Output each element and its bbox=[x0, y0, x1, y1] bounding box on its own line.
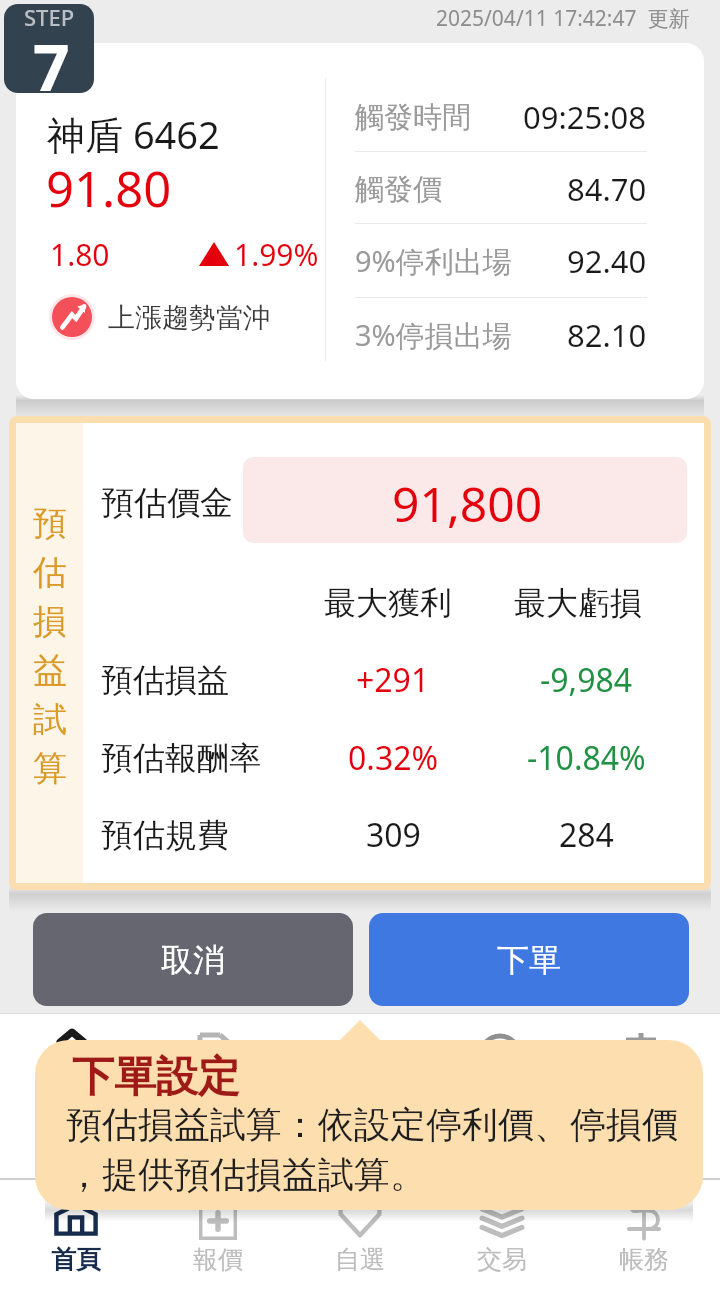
button[interactable]: 帳務 bbox=[572, 1198, 716, 1298]
staticText: 上漲趨勢當沖 bbox=[108, 301, 270, 335]
staticText: 預估損益試算：依設定停利價、停損價 bbox=[66, 1102, 678, 1147]
button[interactable]: 下單 bbox=[369, 913, 689, 1006]
staticText: 92.40 bbox=[567, 240, 647, 282]
staticText: 益 bbox=[33, 649, 67, 692]
staticText: 估 bbox=[33, 551, 67, 594]
staticText: 預估價金 bbox=[101, 482, 233, 524]
staticText: 3%停損出場 bbox=[355, 315, 512, 355]
other: 交易 bbox=[479, 1205, 525, 1237]
staticText: 損 bbox=[33, 600, 67, 643]
staticText: 9%停利出場 bbox=[355, 241, 512, 281]
button[interactable]: 交易 bbox=[430, 1198, 574, 1298]
button[interactable]: 首頁 bbox=[4, 1198, 148, 1298]
staticText: 自選 bbox=[335, 1244, 385, 1275]
staticText: 試 bbox=[33, 698, 67, 741]
staticText: 預估規費 bbox=[101, 815, 229, 855]
staticText: 0.32% bbox=[348, 736, 439, 780]
staticText: 91.80 bbox=[46, 155, 172, 222]
button[interactable]: 取消 bbox=[33, 913, 353, 1006]
button[interactable] bbox=[35, 1040, 703, 1210]
staticText: 82.10 bbox=[567, 314, 647, 356]
staticText: 309 bbox=[366, 813, 421, 857]
staticText: 神盾 6462 bbox=[47, 108, 220, 160]
staticText: 預 bbox=[33, 502, 67, 545]
button[interactable]: 自選 bbox=[288, 1198, 432, 1298]
staticText: 1.80 bbox=[50, 234, 110, 275]
other: 帳務 bbox=[625, 1201, 663, 1241]
staticText: 預估損益 bbox=[101, 660, 229, 700]
staticText: -9,984 bbox=[540, 658, 633, 702]
staticText: 報價 bbox=[193, 1244, 243, 1275]
staticText: 預估報酬率 bbox=[101, 738, 261, 778]
other: 自選 bbox=[338, 1204, 382, 1238]
staticText: ，提供預估損益試算。 bbox=[66, 1152, 426, 1197]
staticText: -10.84% bbox=[527, 736, 646, 780]
staticText: 觸發時間 bbox=[355, 99, 471, 136]
staticText: 取消 bbox=[161, 940, 225, 980]
staticText: 帳務 bbox=[619, 1244, 669, 1275]
staticText: 1.99% bbox=[234, 234, 319, 275]
staticText: 算 bbox=[33, 747, 67, 790]
staticText: 09:25:08 bbox=[523, 96, 647, 138]
staticText: 觸發價 bbox=[355, 171, 442, 208]
staticText: 下單 bbox=[497, 940, 561, 980]
button[interactable]: 報價 bbox=[146, 1198, 290, 1298]
staticText: 91,800 bbox=[392, 471, 543, 536]
staticText: 最大虧損 bbox=[514, 583, 642, 623]
staticText: 7 bbox=[33, 23, 70, 103]
staticText: 最大獲利 bbox=[324, 583, 452, 623]
staticText: +291 bbox=[356, 658, 430, 702]
staticText: 下單設定 bbox=[72, 1051, 240, 1104]
other: 報價 bbox=[199, 1202, 237, 1240]
staticText: 2025/04/11 17:42:47 更新 bbox=[436, 4, 690, 33]
staticText: 首頁 bbox=[51, 1244, 101, 1275]
staticText: 84.70 bbox=[567, 168, 647, 210]
other: 首頁 bbox=[54, 1206, 98, 1236]
staticText: 284 bbox=[559, 813, 614, 857]
staticText: STEP bbox=[24, 2, 75, 32]
staticText: 交易 bbox=[477, 1244, 527, 1275]
